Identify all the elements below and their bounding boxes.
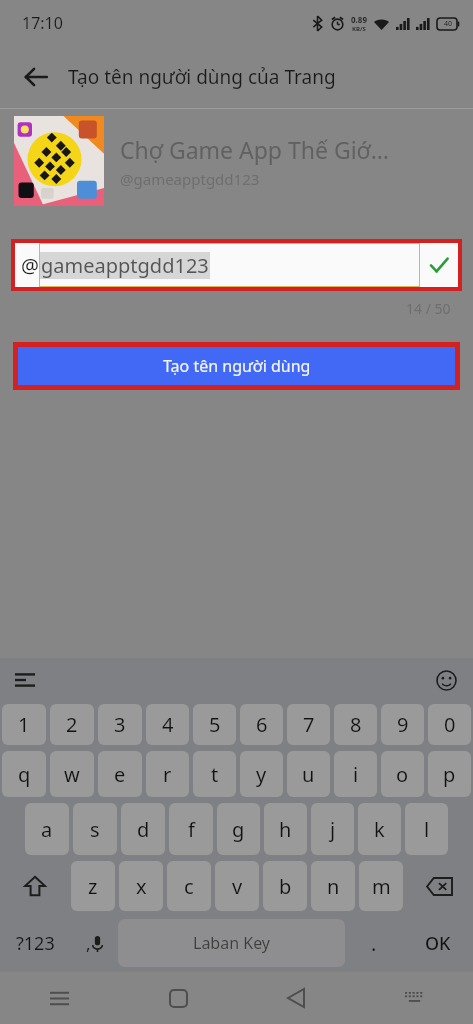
staticText: 2 (66, 711, 78, 738)
button[interactable]: d (121, 803, 165, 855)
staticText: Tạo tên người dùng (163, 355, 311, 377)
button[interactable]: 4 (146, 704, 189, 745)
button[interactable]: c (167, 861, 211, 911)
staticText: l (424, 816, 430, 843)
button[interactable]: p (428, 751, 471, 797)
button[interactable]: f (169, 803, 213, 855)
staticText: 6 (256, 711, 268, 738)
button[interactable]: Home (119, 972, 237, 1024)
staticText: 14 / 50 (406, 299, 451, 318)
button[interactable]: @ (15, 243, 458, 287)
staticText: 3 (114, 711, 126, 738)
button[interactable]: b (263, 861, 307, 911)
staticText: z (88, 873, 98, 900)
button[interactable]: Back (237, 972, 355, 1024)
button[interactable]: 7 (287, 704, 330, 745)
staticText: 40 (444, 19, 453, 29)
staticText: gameapptgdd123 (41, 252, 209, 279)
button[interactable]: 5 (193, 704, 236, 745)
button[interactable]: 9 (381, 704, 424, 745)
staticText: p (443, 761, 456, 788)
staticText: r (163, 761, 172, 788)
staticText: 1 (18, 711, 30, 738)
staticText: m (372, 873, 391, 900)
staticText: u (302, 761, 315, 788)
button[interactable]: i (334, 751, 377, 797)
staticText: 0 (444, 711, 456, 738)
button[interactable]: Backspace (405, 858, 473, 914)
staticText: 7 (303, 711, 315, 738)
staticText: g (232, 816, 245, 843)
button[interactable]: t (193, 751, 236, 797)
staticText: Chợ Game App Thế Giớ… (120, 134, 389, 165)
staticText: s (90, 816, 100, 843)
button[interactable]: 6 (240, 704, 283, 745)
button[interactable]: Emoji (429, 663, 463, 697)
staticText: d (137, 816, 150, 843)
button[interactable]: m (359, 861, 403, 911)
button[interactable]: Recent apps (0, 972, 119, 1024)
button[interactable]: a (25, 803, 69, 855)
button[interactable]: z (71, 861, 115, 911)
button[interactable]: o (381, 751, 424, 797)
staticText: @ (21, 252, 39, 279)
staticText: b (279, 873, 292, 900)
button[interactable]: Tạo tên người dùng (18, 347, 455, 385)
staticText: e (114, 761, 126, 788)
staticText: w (64, 761, 80, 788)
button[interactable]: . (345, 914, 402, 972)
staticText: Tạo tên người dùng của Trang (68, 64, 336, 90)
staticText: f (188, 816, 195, 843)
staticText: x (136, 873, 147, 900)
button[interactable]: u (287, 751, 330, 797)
staticText: 17:10 (22, 12, 63, 34)
button[interactable]: h (264, 803, 307, 855)
button[interactable]: k (358, 803, 401, 855)
staticText: n (327, 873, 340, 900)
button[interactable]: v (215, 861, 259, 911)
button[interactable]: n (311, 861, 355, 911)
button[interactable]: ?123 (0, 914, 71, 972)
staticText: a (41, 816, 53, 843)
button[interactable]: Laban Key (118, 919, 345, 967)
button[interactable]: Hide keyboard (355, 972, 473, 1024)
button[interactable]: Keyboard menu (8, 663, 42, 697)
button[interactable]: y (240, 751, 283, 797)
button[interactable]: x (119, 861, 163, 911)
button[interactable]: 0 (428, 704, 471, 745)
staticText: KB/S (352, 25, 366, 33)
staticText: j (330, 816, 336, 843)
button[interactable]: r (146, 751, 189, 797)
staticText: o (396, 761, 409, 788)
button[interactable]: q (2, 751, 46, 797)
button[interactable]: Shift (0, 858, 69, 914)
button[interactable]: Back (12, 53, 60, 101)
button[interactable]: l (405, 803, 448, 855)
button[interactable]: e (98, 751, 142, 797)
staticText: 8 (350, 711, 362, 738)
staticText: @gameapptgdd123 (120, 169, 260, 189)
button[interactable]: w (50, 751, 94, 797)
staticText: k (374, 816, 385, 843)
staticText: q (18, 761, 31, 788)
button[interactable]: Chợ Game App Thế Giớ… (0, 109, 473, 213)
button[interactable]: j (311, 803, 354, 855)
button[interactable]: 2 (50, 704, 94, 745)
staticText: . (371, 930, 377, 957)
staticText: c (184, 873, 194, 900)
staticText: 4 (162, 711, 174, 738)
staticText: 0.89 (351, 14, 367, 25)
button[interactable]: g (217, 803, 260, 855)
staticText: i (353, 761, 359, 788)
button[interactable]: 8 (334, 704, 377, 745)
staticText: t (211, 761, 219, 788)
button[interactable]: 1 (2, 704, 46, 745)
button[interactable]: OK (402, 914, 473, 972)
staticText: y (256, 761, 267, 788)
staticText: v (232, 873, 243, 900)
button[interactable]: Voice input (71, 914, 118, 972)
button[interactable]: s (73, 803, 117, 855)
staticText: OK (425, 931, 451, 956)
staticText: ?123 (16, 931, 55, 956)
button[interactable]: 3 (98, 704, 142, 745)
